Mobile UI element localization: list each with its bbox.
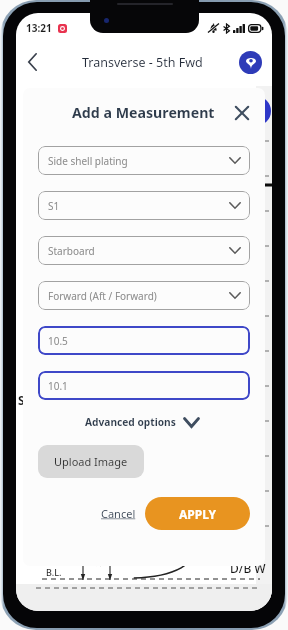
button[interactable]: Close — [231, 102, 253, 124]
staticText: 13:21 — [26, 21, 52, 35]
staticText: 10.1 — [48, 379, 68, 393]
button[interactable]: Forward (Aft / Forward) — [38, 281, 250, 310]
button[interactable]: Back — [18, 48, 46, 76]
staticText: Cancel — [101, 506, 136, 521]
button[interactable]: 10.5 — [38, 326, 250, 355]
button[interactable]: 10.1 — [38, 371, 250, 400]
staticText: Add a Measurement — [72, 103, 215, 122]
staticText: S1 — [48, 199, 60, 213]
staticText: APPLY — [179, 506, 217, 522]
button[interactable]: APPLY — [145, 497, 250, 530]
staticText: Forward (Aft / Forward) — [48, 289, 157, 303]
button[interactable]: Location — [239, 51, 262, 74]
staticText: Transverse - 5th Fwd — [82, 54, 203, 71]
button[interactable]: Starboard — [38, 236, 250, 265]
button[interactable]: Side shell plating — [38, 146, 250, 175]
button[interactable]: Advanced options — [38, 411, 250, 433]
button[interactable]: S1 — [38, 191, 250, 220]
staticText: Upload Image — [54, 454, 128, 469]
staticText: D/B W — [230, 560, 266, 576]
staticText: 10.5 — [48, 334, 68, 348]
staticText: S — [18, 392, 25, 408]
staticText: Starboard — [48, 244, 95, 258]
staticText: B.L. — [46, 566, 62, 578]
button[interactable]: Cancel — [97, 501, 140, 526]
button[interactable]: Upload Image — [38, 445, 144, 478]
staticText: Advanced options — [85, 415, 176, 429]
staticText: Side shell plating — [48, 154, 128, 168]
